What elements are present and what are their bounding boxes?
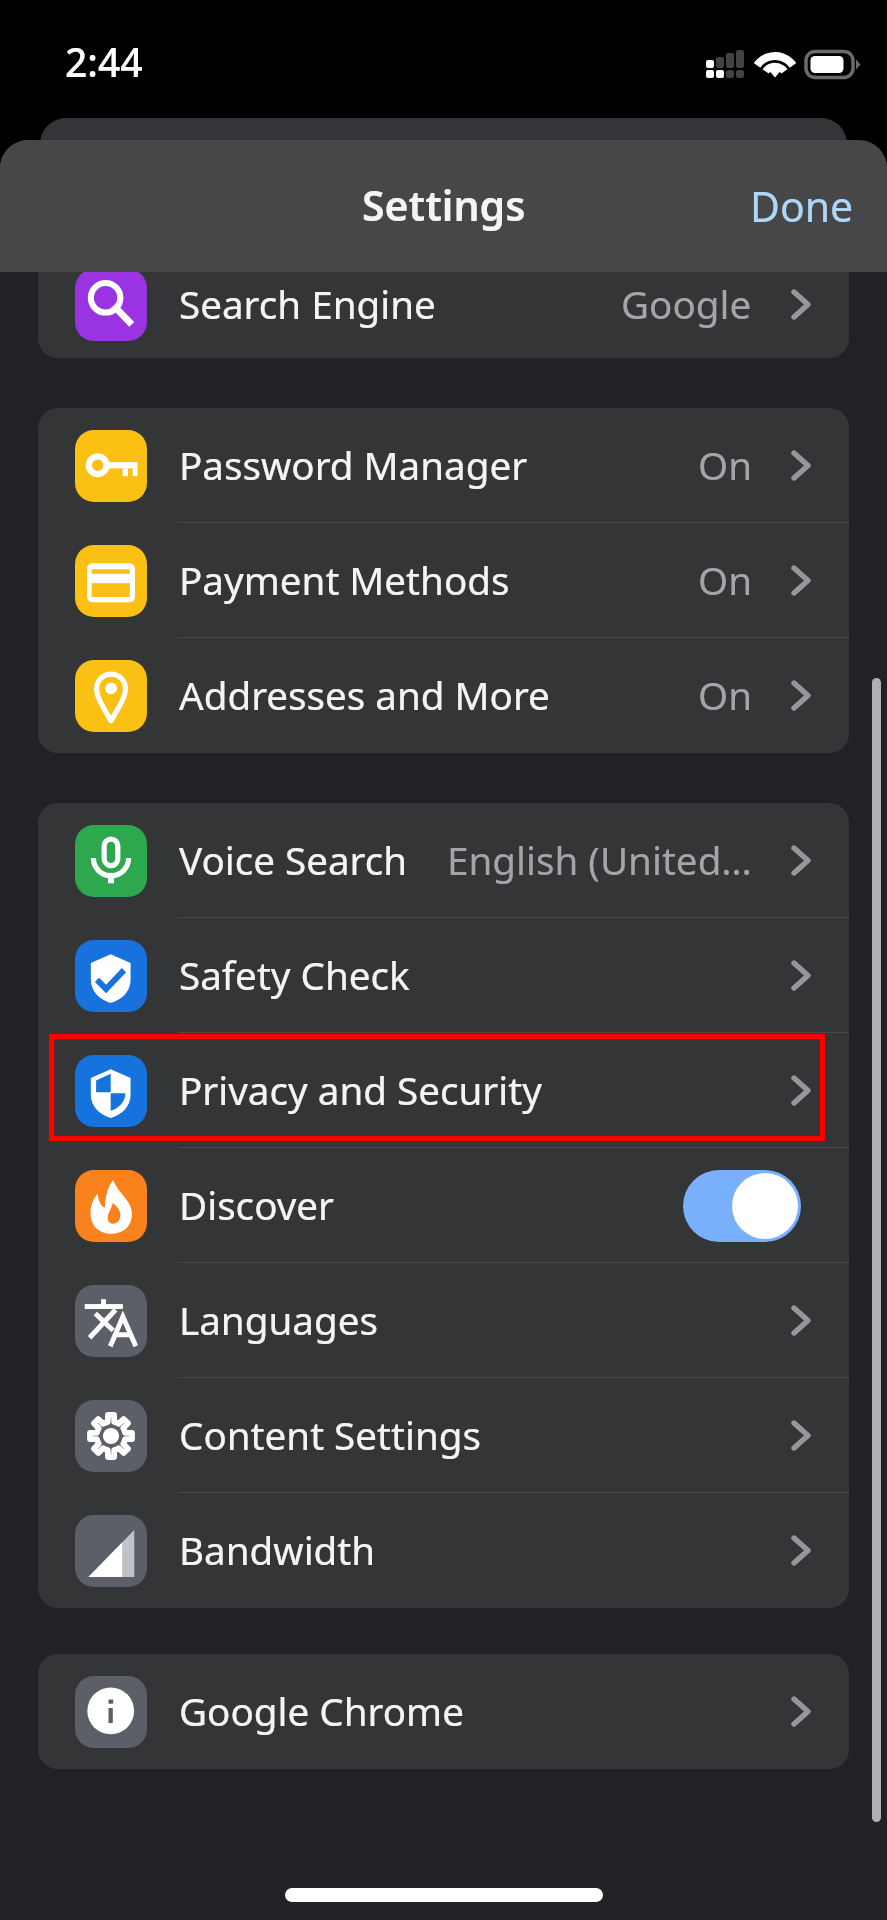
staticText: Password Manager <box>179 439 528 492</box>
button[interactable]: Content Settings <box>38 1378 849 1493</box>
button[interactable]: Done <box>750 178 854 234</box>
staticText: Privacy and Security <box>179 1064 542 1117</box>
staticText: On <box>698 439 752 492</box>
button[interactable]: Addresses and More <box>38 638 849 753</box>
staticText: Safety Check <box>179 949 410 1002</box>
staticText: Voice Search <box>179 834 408 887</box>
staticText: Payment Methods <box>179 554 510 607</box>
button[interactable]: Languages <box>38 1263 849 1378</box>
button[interactable]: Search Engine <box>38 272 849 358</box>
button[interactable]: Privacy and Security <box>38 1033 849 1148</box>
staticText: On <box>698 669 752 722</box>
staticText: Content Settings <box>179 1409 481 1462</box>
staticText: Done <box>750 178 854 234</box>
button[interactable]: Safety Check <box>38 918 849 1033</box>
staticText: On <box>698 554 752 607</box>
staticText: Settings <box>362 177 526 233</box>
staticText: Google <box>621 278 752 331</box>
staticText: Bandwidth <box>179 1524 376 1577</box>
button[interactable]: Voice Search <box>38 803 849 918</box>
button[interactable]: Bandwidth <box>38 1493 849 1608</box>
staticText: Discover <box>179 1179 335 1232</box>
staticText: Languages <box>179 1294 378 1347</box>
button[interactable]: Discover toggle <box>683 1170 801 1242</box>
staticText: Addresses and More <box>179 669 550 722</box>
button[interactable]: Payment Methods <box>38 523 849 638</box>
staticText: English (United… <box>447 834 752 887</box>
button[interactable]: Google Chrome <box>38 1654 849 1769</box>
button[interactable]: Discover <box>38 1148 849 1263</box>
staticText: 2:44 <box>65 35 143 88</box>
staticText: Google Chrome <box>179 1685 464 1738</box>
button[interactable]: Password Manager <box>38 408 849 523</box>
staticText: Search Engine <box>179 278 436 331</box>
